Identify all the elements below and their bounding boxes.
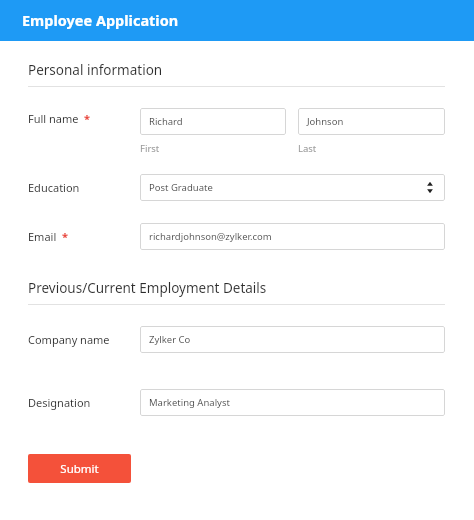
staticText: Richard (149, 115, 183, 128)
staticText: Last (298, 142, 317, 155)
button[interactable]: Zylker Co (140, 326, 445, 353)
button[interactable]: Richard (140, 108, 286, 135)
staticText: * (62, 229, 68, 244)
staticText: Post Graduate (149, 181, 213, 194)
staticText: Employee Application (22, 10, 179, 30)
staticText: Zylker Co (149, 333, 191, 346)
staticText: Marketing Analyst (149, 396, 230, 409)
staticText: Submit (60, 461, 99, 477)
button[interactable]: Johnson (298, 108, 445, 135)
button[interactable]: richardjohnson@zylker.com (140, 223, 445, 250)
staticText: richardjohnson@zylker.com (149, 230, 272, 243)
staticText: Previous/Current Employment Details (28, 279, 267, 297)
staticText: Full name (28, 111, 79, 126)
button[interactable]: Marketing Analyst (140, 389, 445, 416)
button[interactable]: Post Graduate (140, 174, 445, 201)
staticText: Personal information (28, 61, 163, 79)
staticText: First (140, 142, 160, 155)
staticText: Email (28, 229, 57, 244)
staticText: * (84, 111, 90, 126)
staticText: Company name (28, 332, 110, 347)
staticText: Education (28, 180, 80, 195)
staticText: Designation (28, 395, 91, 410)
button[interactable]: Submit (28, 454, 131, 483)
staticText: Johnson (307, 115, 344, 128)
